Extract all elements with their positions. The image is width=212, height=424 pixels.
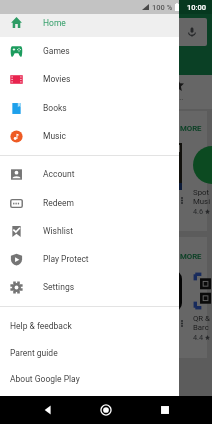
- staticText: Music: [43, 131, 67, 141]
- button[interactable]: Games: [0, 37, 179, 65]
- staticText: Home: [43, 18, 66, 28]
- button[interactable]: Movies: [0, 65, 179, 93]
- staticText: 100 %: [152, 3, 173, 12]
- button[interactable]: Home: [95, 399, 117, 421]
- staticText: MORE: [180, 252, 202, 261]
- button[interactable]: Play Protect: [0, 245, 179, 273]
- staticText: MORE: [180, 124, 202, 133]
- button[interactable]: Music: [0, 122, 179, 150]
- button[interactable]: Help & feedback: [0, 313, 179, 339]
- staticText: APPS & GAMES: [8, 56, 79, 67]
- staticText: 10:00: [187, 3, 207, 12]
- staticText: Play Protect: [43, 254, 89, 264]
- staticText: Help & feedback: [10, 321, 72, 331]
- staticText: About Google Play: [10, 374, 80, 384]
- staticText: Games: [43, 46, 70, 56]
- staticText: 4.6: [193, 207, 205, 216]
- staticText: Account: [43, 169, 75, 179]
- button[interactable]: Wishlist: [0, 217, 179, 245]
- button[interactable]: Recents: [154, 399, 176, 421]
- staticText: Books: [43, 103, 67, 113]
- button[interactable]: Parent guide: [0, 340, 179, 366]
- staticText: Redeem: [43, 198, 75, 208]
- staticText: Spot: [193, 188, 210, 197]
- staticText: o...: [158, 93, 198, 102]
- staticText: Wishlist: [43, 226, 73, 236]
- staticText: 4.4: [193, 333, 205, 342]
- button[interactable]: Books: [0, 94, 179, 122]
- button[interactable]: Home: [0, 9, 179, 37]
- staticText: QR &: [193, 314, 210, 323]
- staticText: Barc: [193, 323, 209, 332]
- button[interactable]: Redeem: [0, 189, 179, 217]
- staticText: Settings: [43, 282, 75, 292]
- button[interactable]: Account: [0, 160, 179, 188]
- button[interactable]: Settings: [0, 273, 179, 301]
- staticText: Movies: [43, 74, 71, 84]
- button[interactable]: Back: [37, 399, 59, 421]
- button[interactable]: About Google Play: [0, 366, 179, 392]
- staticText: Parent guide: [10, 348, 58, 358]
- staticText: Musi: [193, 197, 211, 206]
- staticText: Google Play: [35, 27, 83, 38]
